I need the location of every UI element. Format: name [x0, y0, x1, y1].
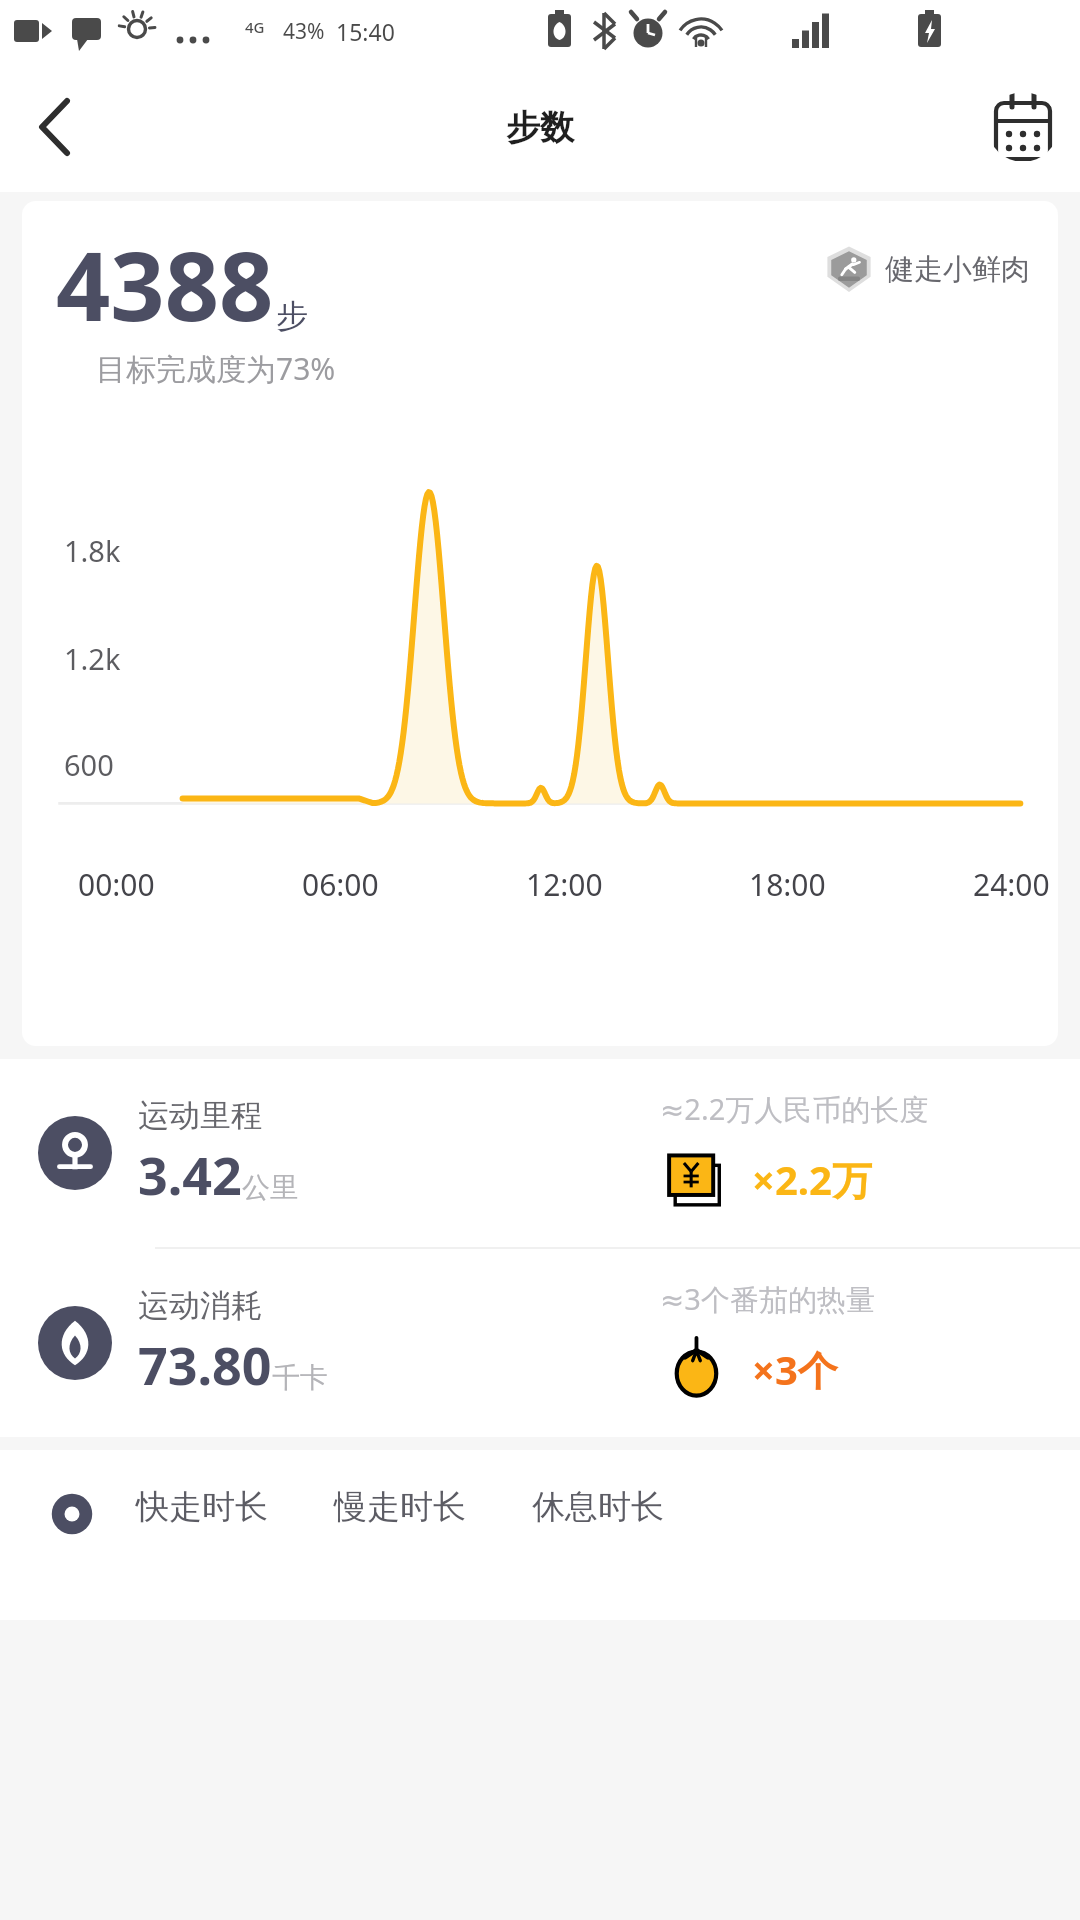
staticText: 4G [245, 17, 265, 37]
staticText: 健走小鲜肉 [885, 251, 1030, 288]
staticText: 4388 [56, 219, 274, 348]
staticText: 运动里程 [138, 1096, 262, 1135]
staticText: 千卡 [272, 1360, 328, 1395]
button[interactable]: Calendar [988, 92, 1058, 162]
staticText: 15:40 [336, 16, 395, 47]
button[interactable]: 4388 [22, 201, 1058, 1046]
staticText: 步数 [506, 106, 574, 149]
staticText: 步 [276, 296, 308, 336]
staticText: 43% [283, 17, 325, 46]
staticText: ×2.2万 [752, 1152, 872, 1207]
staticText: ≈3个番茄的热量 [660, 1279, 875, 1319]
staticText: ≈2.2万人民币的长度 [660, 1089, 929, 1129]
staticText: 1.2k [64, 639, 121, 678]
button[interactable]: 慢走时长 [334, 1486, 466, 1528]
button[interactable]: 运动消耗 [0, 1249, 1080, 1437]
button[interactable]: 休息时长 [532, 1486, 664, 1528]
button[interactable]: Back [20, 92, 90, 162]
staticText: 00:00 [78, 864, 155, 905]
staticText: 公里 [242, 1170, 298, 1205]
button[interactable]: 运动里程 [0, 1059, 1080, 1247]
button[interactable]: 健走小鲜肉 [825, 245, 1030, 293]
staticText: 06:00 [302, 864, 379, 905]
staticText: 12:00 [526, 864, 603, 905]
staticText: 73.80 [138, 1329, 272, 1400]
staticText: 3.42 [138, 1139, 242, 1210]
staticText: 1.8k [64, 531, 121, 570]
staticText: ×3个 [752, 1342, 838, 1397]
staticText: 600 [64, 745, 114, 784]
staticText: 目标完成度为73% [96, 348, 336, 389]
staticText: 运动消耗 [138, 1286, 262, 1325]
staticText: 24:00 [973, 864, 1050, 905]
staticText: 18:00 [749, 864, 826, 905]
button[interactable]: 快走时长 [136, 1486, 268, 1528]
